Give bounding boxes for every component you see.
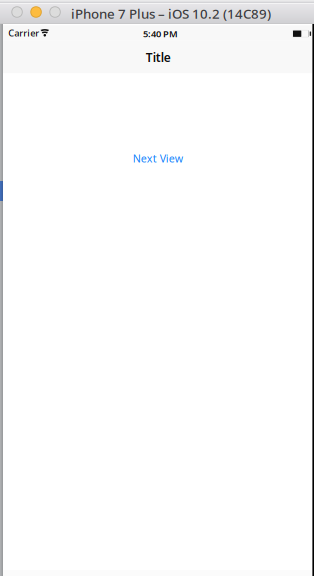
- staticText: Title: [146, 49, 171, 65]
- button[interactable]: Next View: [130, 149, 186, 167]
- staticText: Carrier: [8, 27, 39, 39]
- button[interactable]: Zoom: [50, 7, 60, 17]
- staticText: 5:40 PM: [143, 27, 178, 40]
- staticText: iPhone 7 Plus – iOS 10.2 (14C89): [71, 5, 271, 22]
- button[interactable]: Minimize: [31, 7, 41, 17]
- button[interactable]: Close: [12, 7, 22, 17]
- staticText: Next View: [133, 151, 183, 165]
